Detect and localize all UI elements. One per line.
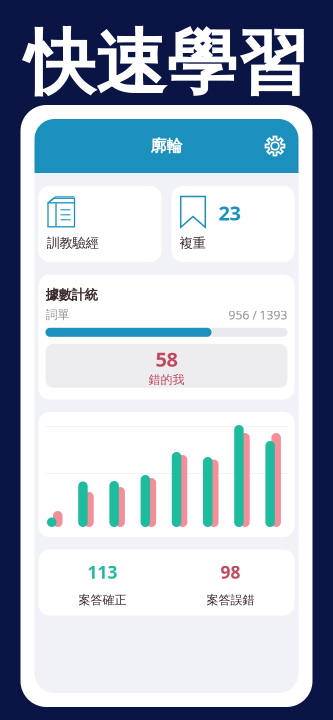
button[interactable]: 58 <box>45 344 287 388</box>
button[interactable]: 訓教驗經 <box>38 186 161 262</box>
staticText: 錯的我 <box>148 372 184 387</box>
staticText: 詞單 <box>45 307 69 322</box>
staticText: 58 <box>155 346 177 372</box>
staticText: 快速學習 <box>24 20 308 107</box>
staticText: 訓教驗經 <box>46 235 98 251</box>
staticText: 據數計統 <box>45 286 97 303</box>
staticText: 複重 <box>179 235 205 251</box>
button[interactable]: 23 <box>171 186 294 262</box>
staticText: 23 <box>218 199 240 226</box>
button[interactable]: 98 <box>166 560 294 607</box>
staticText: 98 <box>220 560 240 583</box>
staticText: 案答確正 <box>78 592 126 607</box>
button[interactable]: Settings <box>264 135 285 156</box>
staticText: 956 / 1393 <box>228 307 287 323</box>
staticText: 廓輪 <box>150 136 182 156</box>
button[interactable]: 113 <box>38 560 166 607</box>
staticText: 案答誤錯 <box>206 592 254 607</box>
staticText: 113 <box>87 560 117 583</box>
